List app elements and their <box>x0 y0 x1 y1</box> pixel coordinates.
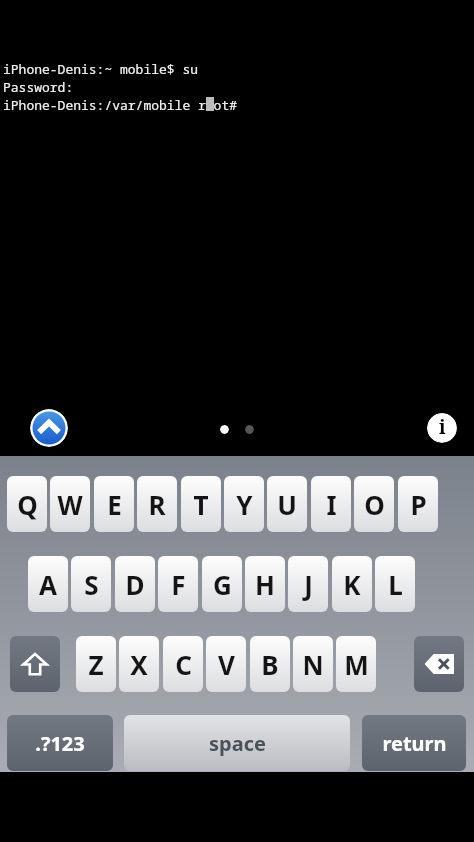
button[interactable]: Scroll up <box>30 409 68 447</box>
staticText: return <box>382 730 447 757</box>
staticText: S <box>84 567 99 602</box>
staticText: N <box>302 647 324 682</box>
button[interactable]: E <box>94 476 134 532</box>
staticText: K <box>343 567 361 602</box>
staticText: E <box>107 487 122 522</box>
staticText: Password: <box>3 78 74 96</box>
button[interactable]: B <box>250 636 290 692</box>
button[interactable]: K <box>332 556 372 612</box>
staticText: C <box>175 647 192 682</box>
button[interactable]: X <box>119 636 159 692</box>
staticText: A <box>39 567 57 602</box>
button[interactable]: M <box>336 636 376 692</box>
button[interactable]: C <box>163 636 203 692</box>
button[interactable]: Y <box>224 476 264 532</box>
button[interactable]: W <box>50 476 90 532</box>
staticText: space <box>209 730 266 757</box>
staticText: Q <box>17 487 38 522</box>
staticText: V <box>218 647 235 682</box>
staticText: H <box>255 567 275 602</box>
staticText: W <box>57 487 83 522</box>
button[interactable]: R <box>137 476 177 532</box>
staticText: X <box>130 647 148 682</box>
staticText: iPhone-Denis:/var/mobile root# <box>3 96 238 114</box>
button[interactable]: P <box>398 476 438 532</box>
button[interactable]: space <box>124 715 350 771</box>
button[interactable]: H <box>245 556 285 612</box>
staticText: T <box>193 487 209 522</box>
button[interactable]: O <box>354 476 394 532</box>
button[interactable]: A <box>28 556 68 612</box>
button[interactable]: Shift <box>10 636 60 692</box>
staticText: I <box>326 487 337 522</box>
button[interactable]: return <box>362 715 466 771</box>
button[interactable]: Z <box>76 636 116 692</box>
button[interactable]: S <box>71 556 111 612</box>
button[interactable]: L <box>375 556 415 612</box>
button[interactable]: G <box>202 556 242 612</box>
button[interactable]: D <box>115 556 155 612</box>
button[interactable]: V <box>206 636 246 692</box>
staticText: J <box>304 567 313 602</box>
staticText: G <box>213 567 232 602</box>
staticText: F <box>171 567 186 602</box>
staticText: U <box>277 487 297 522</box>
staticText: M <box>344 647 369 682</box>
staticText: Z <box>88 647 104 682</box>
button[interactable]: N <box>293 636 333 692</box>
button[interactable]: U <box>267 476 307 532</box>
staticText: R <box>148 487 166 522</box>
staticText: i <box>439 414 446 440</box>
staticText: O <box>364 487 385 522</box>
button[interactable]: Backspace <box>414 636 464 692</box>
staticText: P <box>410 487 427 522</box>
staticText: L <box>388 567 403 602</box>
button[interactable]: .?123 <box>7 715 113 771</box>
button[interactable]: F <box>158 556 198 612</box>
button[interactable]: I <box>311 476 351 532</box>
staticText: Y <box>236 487 253 522</box>
staticText: D <box>125 567 145 602</box>
button[interactable]: J <box>288 556 328 612</box>
staticText: .?123 <box>35 730 85 757</box>
staticText: iPhone-Denis:~ mobile$ su <box>3 60 199 78</box>
button[interactable]: Q <box>7 476 47 532</box>
button[interactable]: Info <box>427 413 457 443</box>
button[interactable]: T <box>181 476 221 532</box>
staticText: B <box>261 647 279 682</box>
